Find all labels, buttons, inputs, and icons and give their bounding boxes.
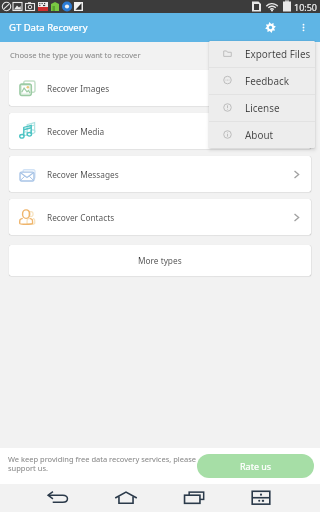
staticText: Recover Messages <box>47 169 119 180</box>
button[interactable]: Rate us <box>197 454 314 478</box>
staticText: Feedback <box>245 74 290 87</box>
button[interactable]: More options <box>290 13 316 42</box>
staticText: 10:50 <box>294 1 318 13</box>
button[interactable]: Recover Media <box>9 113 311 149</box>
staticText: Choose the type you want to recover <box>10 50 141 60</box>
staticText: More types <box>138 255 182 266</box>
button[interactable]: Recover Contacts <box>9 199 311 235</box>
staticText: GT Data Recovery <box>9 21 88 34</box>
staticText: Recover Images <box>47 83 110 94</box>
button[interactable]: License <box>209 95 315 121</box>
button[interactable]: Recover Images <box>9 70 311 106</box>
button[interactable]: Screenshot <box>238 484 284 512</box>
button[interactable]: Recover Messages <box>9 156 311 192</box>
staticText: Recover Contacts <box>47 212 115 223</box>
button[interactable]: More types <box>9 245 311 276</box>
button[interactable]: Recents <box>171 484 217 512</box>
staticText: License <box>245 101 280 114</box>
staticText: Exported Files <box>245 47 311 60</box>
button[interactable]: Exported Files <box>209 41 315 67</box>
staticText: Recover Media <box>47 126 105 137</box>
staticText: Rate us <box>240 460 272 472</box>
button[interactable]: About <box>209 122 315 148</box>
button[interactable]: Feedback <box>209 68 315 94</box>
staticText: We keep providing free data recovery ser… <box>8 454 198 473</box>
button[interactable]: Settings <box>254 13 286 42</box>
staticText: About <box>245 128 274 141</box>
button[interactable]: Back <box>35 484 81 512</box>
button[interactable]: Home <box>103 484 149 512</box>
